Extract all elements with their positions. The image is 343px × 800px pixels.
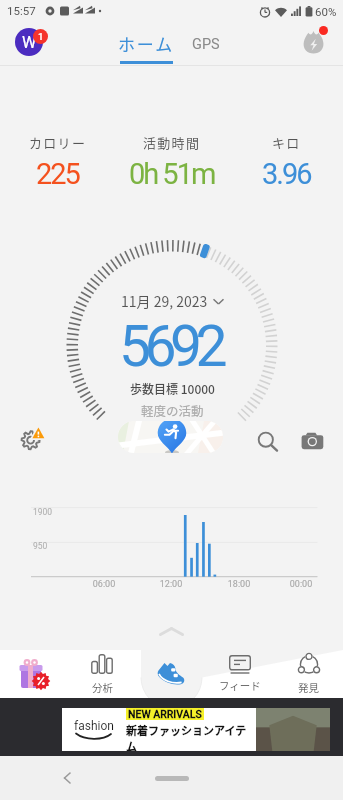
staticText: キロ [272,133,301,152]
staticText: 18:00 [221,579,257,590]
staticText: 活動時間 [143,133,201,152]
staticText: 12:00 [153,579,189,590]
button[interactable]: ホーム [118,31,175,64]
staticText: 1900 [33,507,53,517]
button[interactable]: Settings [18,424,48,454]
staticText: NEW ARRIVALS [128,708,202,720]
staticText: 5692 [119,313,221,380]
staticText: 11月 29, 2023 [121,291,208,311]
button[interactable]: Steps [136,650,205,698]
button[interactable]: 発見 [274,650,343,698]
button[interactable]: Search [255,428,281,454]
button[interactable]: フィード [205,650,274,698]
staticText: 225 [36,157,79,191]
button[interactable]: Profile [14,21,48,55]
staticText: 1 [38,31,44,42]
staticText: カロリー [29,133,87,152]
staticText: 軽度の活動 [141,401,204,419]
staticText: 60% [315,5,337,18]
staticText: 0h 51m [129,157,215,191]
button[interactable]: Activity [302,25,327,50]
staticText: 発見 [298,680,319,695]
button[interactable]: カロリー [0,133,115,191]
button[interactable]: 分析 [68,650,136,698]
staticText: 00:00 [283,579,319,590]
button[interactable]: 11月 29, 2023 [121,291,224,311]
staticText: W [22,33,37,52]
staticText: ホーム [118,31,175,56]
staticText: 新着ファッションアイテム [126,722,256,751]
staticText: 分析 [92,680,113,695]
staticText: 15:57 [7,4,36,17]
button[interactable]: Gifts [0,650,68,698]
button[interactable]: Back [62,772,74,784]
staticText: 06:00 [86,579,122,590]
button[interactable]: GPS [192,36,220,53]
staticText: fashion [74,719,114,733]
button[interactable]: Home [155,776,189,781]
staticText: フィード [219,678,261,693]
button[interactable]: Map route [118,421,223,453]
staticText: 3.96 [262,157,311,191]
staticText: 950 [33,541,48,551]
staticText: 歩数目標 10000 [130,380,215,397]
button[interactable]: 活動時間 [115,133,229,191]
button[interactable]: キロ [229,133,343,191]
button[interactable]: Camera [300,430,326,456]
button[interactable]: Advertisement [62,708,330,751]
